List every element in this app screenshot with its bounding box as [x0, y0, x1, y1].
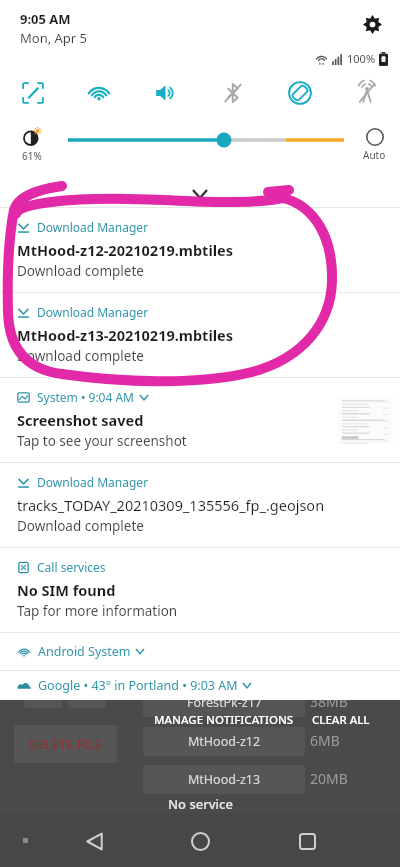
staticText: 100%: [347, 51, 376, 66]
button[interactable]: Recents: [286, 820, 328, 862]
staticText: MtHood-z13-20210219.mbtiles: [17, 325, 233, 345]
staticText: Screenshot saved: [17, 410, 144, 430]
staticText: System • 9:04 AM: [37, 389, 135, 405]
staticText: 20MB: [310, 769, 348, 788]
staticText: Download Manager: [37, 304, 149, 320]
staticText: MtHood-z12: [188, 733, 261, 750]
staticText: 9:05 AM: [20, 10, 71, 28]
button[interactable]: MtHood-z13: [143, 765, 305, 794]
staticText: Download complete: [17, 347, 144, 365]
button[interactable]: Download Manager: [0, 293, 400, 377]
staticText: Download Manager: [37, 219, 149, 235]
staticText: Call services: [37, 559, 106, 575]
staticText: 6MB: [310, 731, 340, 750]
button[interactable]: MtHood-z12: [143, 727, 305, 756]
staticText: Android System: [38, 643, 131, 660]
staticText: MtHood-z12-20210219.mbtiles: [17, 240, 233, 260]
staticText: Tap for more information: [17, 602, 178, 620]
button[interactable]: Edit tiles: [0, 70, 66, 116]
button[interactable]: Auto rotate: [266, 70, 333, 116]
staticText: Download complete: [17, 517, 144, 535]
button[interactable]: Back: [73, 820, 115, 862]
button[interactable]: Sound: [132, 70, 199, 116]
button[interactable]: Download Manager: [0, 463, 400, 547]
button[interactable]: Auto: [363, 128, 386, 162]
button[interactable]: Brightness: [68, 127, 344, 153]
button[interactable]: Bluetooth off: [199, 70, 266, 116]
staticText: CLEAR ALL: [312, 712, 370, 728]
staticText: Google • 43° in Portland • 9:03 AM: [38, 677, 238, 694]
staticText: Mon, Apr 5: [20, 29, 88, 47]
button[interactable]: ForestPk-z17: [143, 688, 305, 717]
button[interactable]: System • 9:04 AM: [0, 378, 400, 462]
button[interactable]: DELETE FILE: [14, 725, 117, 763]
button[interactable]: Hotspot off: [333, 70, 400, 116]
staticText: Tap to see your screenshot: [17, 432, 187, 450]
staticText: No service: [168, 795, 233, 813]
button[interactable]: Android System: [0, 633, 400, 670]
staticText: 61%: [22, 149, 42, 163]
staticText: tracks_TODAY_20210309_135556_fp_.geojson: [17, 495, 325, 515]
staticText: Auto: [363, 148, 386, 162]
button[interactable]: Wi-Fi: [66, 70, 132, 116]
button[interactable]: CLEAR ALL: [306, 706, 376, 734]
staticText: DELETE FILE: [28, 735, 103, 753]
button[interactable]: MANAGE NOTIFICATIONS: [148, 706, 300, 734]
button[interactable]: Download Manager: [0, 208, 400, 292]
staticText: 38MB: [310, 692, 348, 711]
staticText: Download Manager: [37, 474, 149, 490]
button[interactable]: Settings: [358, 10, 386, 38]
button[interactable]: Home: [178, 819, 222, 863]
button[interactable]: Call services: [0, 548, 400, 632]
button[interactable]: Google • 43° in Portland • 9:03 AM: [0, 671, 400, 700]
staticText: MtHood-z13: [188, 771, 261, 788]
staticText: No SIM found: [17, 580, 116, 600]
staticText: MANAGE NOTIFICATIONS: [154, 712, 294, 728]
staticText: Download complete: [17, 262, 144, 280]
staticText: ForestPk-z17: [187, 694, 262, 711]
